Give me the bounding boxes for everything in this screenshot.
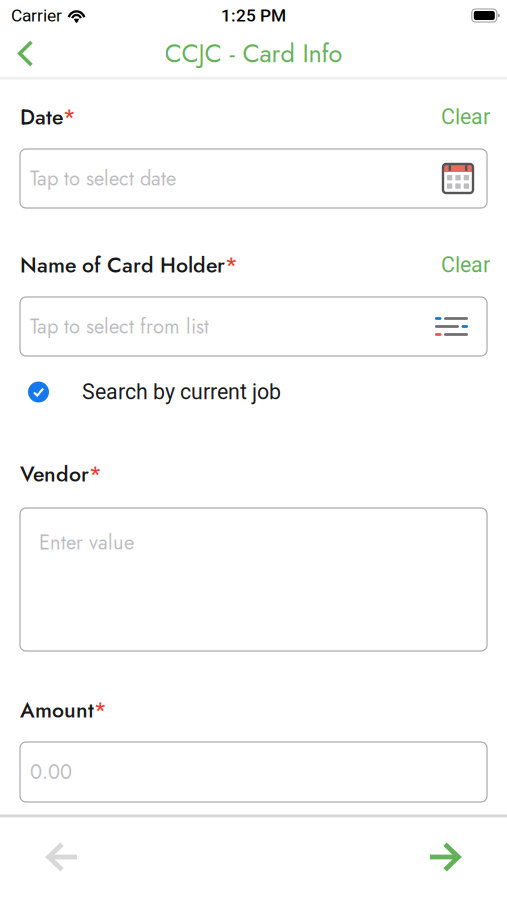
- staticText: Clear: [441, 104, 490, 129]
- button[interactable]: Tap to select date: [0, 149, 507, 208]
- staticText: Carrier: [11, 5, 62, 26]
- staticText: *: [225, 250, 238, 280]
- staticText: Tap to select date: [30, 164, 176, 193]
- button[interactable]: Search by current job: [0, 378, 507, 406]
- staticText: Date: [20, 102, 63, 132]
- staticText: 0.00: [30, 757, 72, 786]
- staticText: Amount: [20, 695, 94, 725]
- button[interactable]: Back: [0, 30, 49, 77]
- staticText: *: [94, 695, 107, 725]
- staticText: Search by current job: [82, 379, 281, 404]
- staticText: 1:25 PM: [221, 5, 286, 26]
- button[interactable]: Tap to select from list: [0, 297, 507, 356]
- staticText: Clear: [441, 252, 490, 277]
- staticText: *: [63, 102, 76, 132]
- button[interactable]: Clear: [441, 104, 490, 129]
- staticText: Vendor: [20, 459, 89, 489]
- staticText: CCJC - Card Info: [164, 35, 342, 72]
- button[interactable]: Next: [401, 827, 488, 887]
- staticText: Name of Card Holder: [20, 250, 225, 280]
- staticText: Tap to select from list: [30, 312, 209, 341]
- button[interactable]: Previous: [19, 827, 103, 887]
- staticText: *: [89, 459, 102, 489]
- staticText: Enter value: [39, 528, 134, 557]
- button[interactable]: Clear: [441, 252, 490, 277]
